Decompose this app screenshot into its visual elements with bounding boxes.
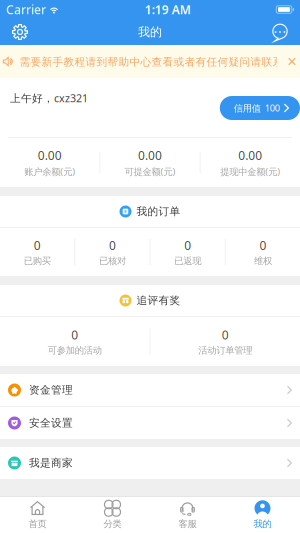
staticText: 0 (34, 237, 41, 253)
staticText: 我的 (253, 518, 271, 530)
staticText: 0.00 (138, 147, 162, 163)
staticText: 需要新手教程请到帮助中心查看或者有任何疑问请联系客服! (19, 54, 300, 69)
staticText: 我的 (138, 25, 162, 39)
staticText: 安全设置 (29, 416, 73, 429)
button[interactable]: 0.00 (201, 138, 300, 187)
button[interactable]: 首页 (0, 497, 75, 533)
button[interactable]: 我的 (225, 497, 300, 533)
staticText: 维权 (254, 255, 272, 267)
staticText: 可参加的活动 (48, 345, 102, 356)
staticText: 1:19 AM (145, 1, 191, 17)
staticText: 可提金额(元) (124, 165, 175, 178)
staticText: 信用值 100 (234, 102, 280, 114)
button[interactable]: 0 (0, 317, 149, 366)
button[interactable]: 我是商家 (0, 447, 300, 479)
button[interactable]: 资金管理 (0, 374, 300, 406)
staticText: 客服 (178, 518, 196, 530)
staticText: 0 (222, 327, 229, 343)
staticText: 已购买 (24, 255, 51, 267)
staticText: 上午好，cxz321 (10, 91, 88, 105)
button[interactable]: Messages (269, 21, 291, 43)
button[interactable]: 信用值 100 (220, 96, 300, 120)
button[interactable]: 安全设置 (0, 407, 300, 439)
button[interactable]: 0 (0, 228, 74, 276)
button[interactable]: 0 (75, 228, 149, 276)
button[interactable]: 0.00 (0, 138, 99, 187)
staticText: 我的订单 (136, 205, 180, 218)
staticText: 追评有奖 (136, 294, 180, 307)
staticText: 分类 (103, 518, 121, 530)
button[interactable]: Dismiss notice (286, 56, 297, 67)
staticText: 账户余额(元) (24, 165, 75, 178)
staticText: Carrier (6, 1, 46, 17)
staticText: 0 (184, 237, 191, 253)
staticText: 0.00 (238, 147, 262, 163)
staticText: 提现中金额(元) (220, 165, 280, 178)
button[interactable]: 0.00 (100, 138, 200, 187)
staticText: 0 (259, 237, 266, 253)
staticText: 资金管理 (29, 383, 73, 396)
staticText: 已返现 (174, 255, 201, 267)
staticText: 0 (109, 237, 116, 253)
staticText: 0 (71, 327, 78, 343)
button[interactable]: 0 (226, 228, 300, 276)
staticText: 我是商家 (29, 456, 73, 469)
button[interactable]: 0 (150, 317, 300, 366)
button[interactable]: 0 (150, 228, 225, 276)
staticText: 活动订单管理 (198, 345, 252, 356)
button[interactable]: Settings (9, 21, 31, 43)
staticText: 已核对 (99, 255, 126, 267)
button[interactable]: 客服 (150, 497, 225, 533)
staticText: 0.00 (38, 147, 62, 163)
staticText: 首页 (28, 518, 46, 530)
button[interactable]: 分类 (75, 497, 150, 533)
